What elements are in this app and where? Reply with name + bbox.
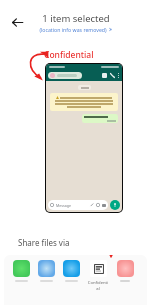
staticText: Message bbox=[56, 203, 71, 208]
staticText: Confidential bbox=[87, 280, 109, 292]
staticText: (location info was removed) bbox=[39, 26, 107, 33]
staticText: Share files via bbox=[18, 237, 70, 248]
button[interactable]: Confidential bbox=[87, 260, 109, 292]
button[interactable] bbox=[62, 260, 80, 282]
button[interactable] bbox=[116, 260, 134, 282]
button[interactable]: (location info was removed) bbox=[37, 26, 114, 33]
staticText: Confidential bbox=[44, 49, 94, 61]
staticText: 1 item selected bbox=[42, 12, 110, 25]
button[interactable]: Send voice message bbox=[110, 200, 120, 210]
button[interactable] bbox=[12, 260, 30, 282]
button[interactable]: Back bbox=[8, 13, 26, 31]
button[interactable] bbox=[37, 260, 55, 282]
